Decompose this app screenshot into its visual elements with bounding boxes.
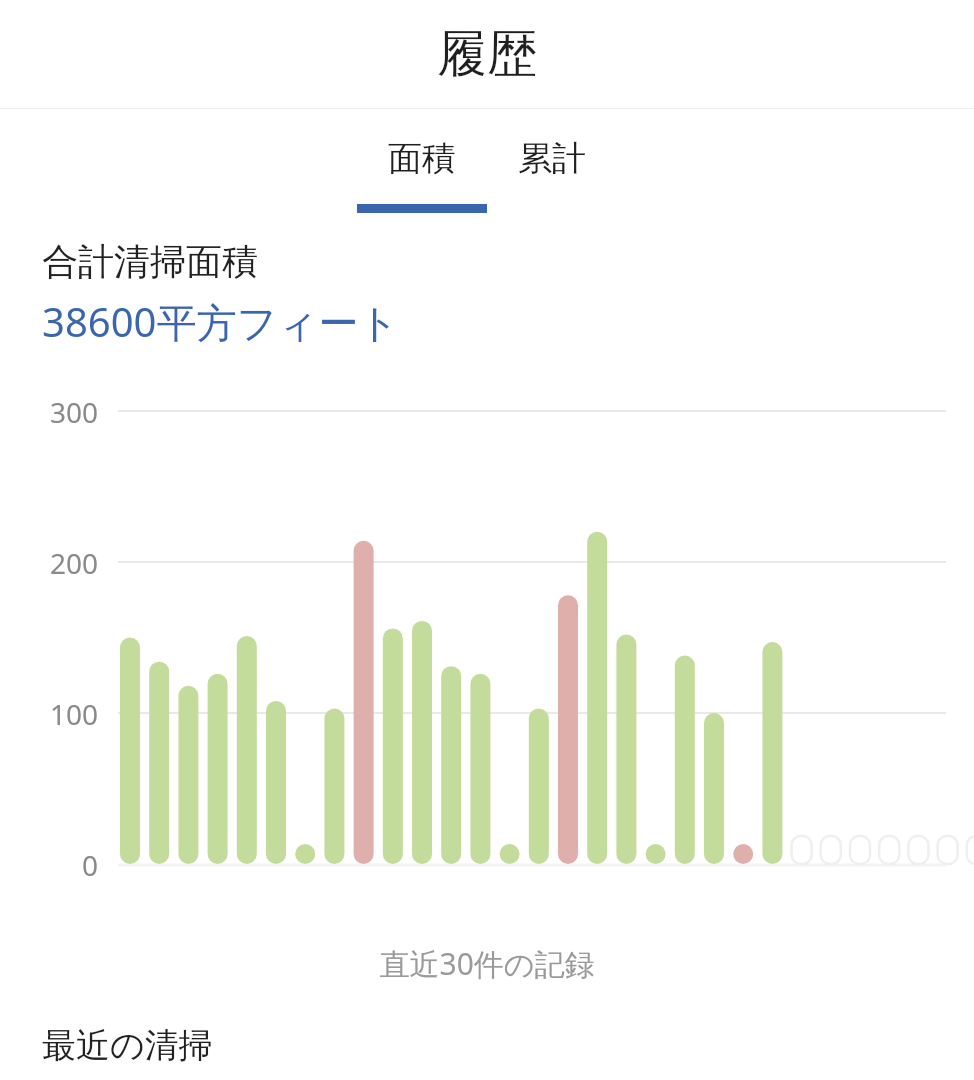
staticText: 300 bbox=[49, 393, 98, 431]
staticText: 0 bbox=[81, 846, 98, 884]
staticText: 合計清掃面積 bbox=[42, 239, 258, 284]
staticText: 累計 bbox=[518, 137, 586, 180]
staticText: 100 bbox=[49, 695, 98, 733]
button[interactable]: 面積 bbox=[357, 137, 487, 213]
staticText: 履歴 bbox=[437, 23, 537, 86]
staticText: 直近30件の記録 bbox=[379, 943, 595, 984]
staticText: 38600平方フィート bbox=[42, 294, 400, 349]
staticText: 最近の清掃 bbox=[42, 1024, 213, 1067]
staticText: 200 bbox=[49, 544, 98, 582]
button[interactable]: 累計 bbox=[487, 137, 617, 180]
staticText: 面積 bbox=[388, 137, 456, 180]
